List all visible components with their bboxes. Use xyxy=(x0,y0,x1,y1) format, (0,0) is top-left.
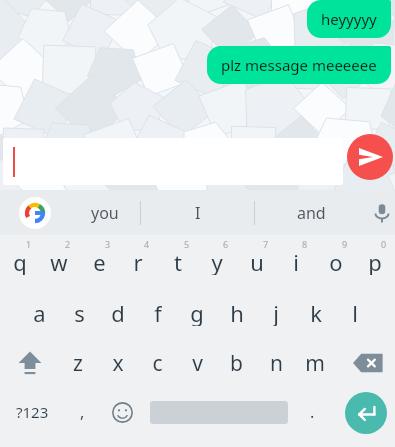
staticText: 4 xyxy=(144,238,150,250)
button[interactable]: you xyxy=(70,190,140,235)
staticText: j xyxy=(273,298,279,326)
button[interactable] xyxy=(296,287,335,337)
staticText: d xyxy=(111,298,125,326)
button[interactable] xyxy=(59,338,98,388)
button[interactable]: Send xyxy=(347,134,393,180)
staticText: p xyxy=(368,247,382,275)
staticText: k xyxy=(310,298,322,326)
button[interactable] xyxy=(296,338,335,388)
button[interactable]: Emoji xyxy=(102,390,142,434)
button[interactable] xyxy=(177,338,216,388)
staticText: b xyxy=(230,349,243,377)
button[interactable] xyxy=(20,287,59,337)
button[interactable] xyxy=(79,235,118,285)
button[interactable]: . xyxy=(292,390,332,434)
staticText: q xyxy=(13,247,27,275)
button[interactable] xyxy=(158,235,197,285)
staticText: f xyxy=(154,298,162,326)
staticText: s xyxy=(74,298,85,326)
button[interactable] xyxy=(356,235,395,285)
button[interactable] xyxy=(237,235,276,285)
button[interactable]: Backspace xyxy=(343,340,393,386)
button[interactable]: , xyxy=(62,390,102,434)
button[interactable] xyxy=(59,287,98,337)
staticText: g xyxy=(190,298,204,326)
button[interactable]: Google xyxy=(19,197,51,229)
staticText: u xyxy=(250,247,264,275)
button[interactable]: and xyxy=(255,190,368,235)
staticText: e xyxy=(93,247,106,275)
staticText: h xyxy=(230,298,244,326)
button[interactable]: Voice input xyxy=(368,190,395,235)
button[interactable] xyxy=(256,338,295,388)
staticText: I xyxy=(195,202,201,224)
button[interactable]: ?123 xyxy=(2,390,62,434)
button[interactable] xyxy=(316,235,355,285)
button[interactable] xyxy=(138,287,177,337)
staticText: 5 xyxy=(184,238,190,250)
button[interactable] xyxy=(336,287,375,337)
staticText: 3 xyxy=(105,238,111,250)
staticText: z xyxy=(73,349,83,377)
button[interactable]: heyyyyy xyxy=(307,0,391,38)
staticText: plz message meeeeee xyxy=(221,55,377,75)
button[interactable] xyxy=(178,287,217,337)
staticText: x xyxy=(112,349,124,377)
staticText: and xyxy=(297,202,326,224)
staticText: ?123 xyxy=(16,402,49,422)
button[interactable] xyxy=(119,235,158,285)
staticText: v xyxy=(192,349,203,377)
staticText: t xyxy=(174,247,182,275)
staticText: y xyxy=(211,247,223,275)
staticText: 6 xyxy=(223,238,229,250)
staticText: 9 xyxy=(342,238,348,250)
staticText: m xyxy=(305,349,325,377)
staticText: 7 xyxy=(263,238,269,250)
staticText: c xyxy=(152,349,163,377)
staticText: , xyxy=(80,401,85,423)
staticText: . xyxy=(310,401,315,423)
staticText: i xyxy=(293,247,299,275)
button[interactable]: Enter xyxy=(345,392,387,434)
button[interactable]: I xyxy=(141,190,254,235)
staticText: a xyxy=(33,298,46,326)
button[interactable] xyxy=(257,287,296,337)
staticText: heyyyyy xyxy=(321,9,377,29)
staticText: n xyxy=(270,349,283,377)
button[interactable] xyxy=(198,235,237,285)
staticText: r xyxy=(133,247,143,275)
button[interactable]: Shift xyxy=(4,340,56,386)
button[interactable] xyxy=(217,338,256,388)
staticText: 2 xyxy=(65,238,71,250)
button[interactable] xyxy=(99,287,138,337)
staticText: 0 xyxy=(381,238,387,250)
button[interactable] xyxy=(217,287,256,337)
button[interactable]: plz message meeeeee xyxy=(207,46,391,84)
staticText: 8 xyxy=(302,238,308,250)
button[interactable] xyxy=(98,338,137,388)
button[interactable] xyxy=(3,138,343,185)
staticText: w xyxy=(50,247,68,275)
staticText: l xyxy=(352,298,358,326)
staticText: o xyxy=(329,247,343,275)
staticText: 1 xyxy=(26,238,32,250)
button[interactable] xyxy=(0,235,39,285)
button[interactable] xyxy=(40,235,79,285)
button[interactable] xyxy=(277,235,316,285)
button[interactable] xyxy=(138,338,177,388)
staticText: you xyxy=(91,202,119,224)
